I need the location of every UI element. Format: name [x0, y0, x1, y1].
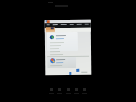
button[interactable]: Favourites: [55, 87, 63, 97]
button[interactable]: Profile: [80, 87, 88, 97]
button[interactable]: Search: [64, 87, 72, 97]
button[interactable]: [45, 20, 91, 75]
button[interactable]: Home: [47, 87, 55, 97]
button[interactable]: Library: [72, 87, 80, 97]
button[interactable]: [47, 57, 76, 68]
button[interactable]: [47, 32, 78, 51]
